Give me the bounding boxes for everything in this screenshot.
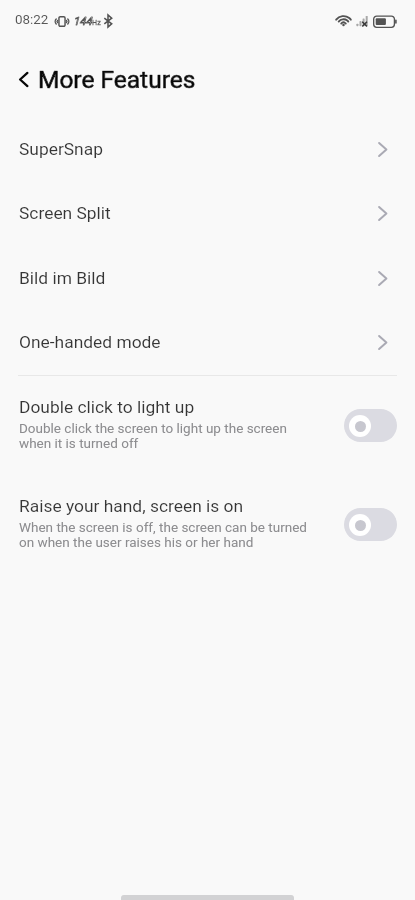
button[interactable]: Toggle off	[344, 409, 397, 442]
button[interactable]: Bild im Bild	[0, 246, 415, 310]
staticText: 144	[73, 15, 92, 28]
button[interactable]: Toggle off	[344, 508, 397, 541]
staticText: Double click the screen to light up the …	[19, 420, 287, 452]
staticText: One-handed mode	[19, 332, 161, 352]
staticText: Hz	[92, 18, 101, 26]
staticText: Bild im Bild	[19, 268, 106, 288]
button[interactable]: Screen Split	[0, 181, 415, 245]
staticText: More Features	[38, 65, 196, 94]
staticText: 08:22	[15, 12, 49, 28]
button[interactable]: Double click to light up	[0, 392, 415, 474]
button[interactable]: Raise your hand, screen is on	[0, 491, 415, 573]
button[interactable]: Back	[9, 65, 37, 93]
button[interactable]: SuperSnap	[0, 117, 415, 181]
staticText: More Features	[38, 65, 196, 94]
staticText: Screen Split	[19, 203, 111, 223]
staticText: Double click to light up	[19, 397, 195, 417]
button[interactable]: One-handed mode	[0, 310, 415, 374]
staticText: SuperSnap	[19, 139, 103, 159]
staticText: When the screen is off, the screen can b…	[19, 519, 307, 551]
staticText: Raise your hand, screen is on	[19, 496, 244, 516]
